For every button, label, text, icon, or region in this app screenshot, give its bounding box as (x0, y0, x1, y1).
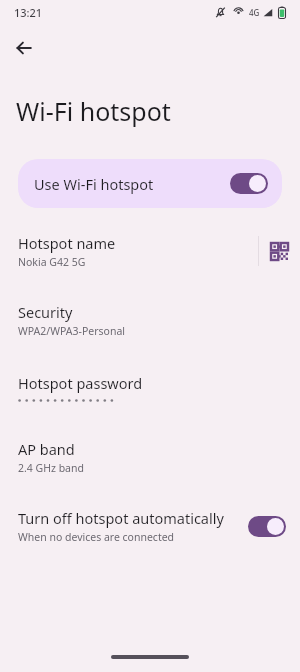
button[interactable]: Back (6, 30, 42, 66)
staticText: When no devices are connected (18, 530, 175, 544)
staticText: 13:21 (14, 5, 43, 20)
button[interactable]: Use Wi-Fi hotspot (18, 159, 282, 208)
staticText: Security (18, 302, 73, 322)
button[interactable]: Hotspot name (0, 223, 258, 279)
staticText: Turn off hotspot automatically (18, 508, 224, 528)
button[interactable]: Hotspot password (0, 360, 300, 416)
button[interactable]: Toggle (248, 516, 286, 537)
staticText: Nokia G42 5G (18, 255, 86, 269)
staticText: Wi-Fi hotspot (16, 94, 171, 128)
button[interactable]: Toggle (230, 173, 268, 194)
button[interactable]: AP band (0, 426, 300, 488)
staticText: WPA2/WPA3-Personal (18, 324, 125, 338)
staticText: 2.4 GHz band (18, 461, 84, 475)
staticText: Hotspot name (18, 233, 116, 253)
button[interactable]: Security (0, 289, 300, 351)
button[interactable]: Turn off hotspot automatically (0, 497, 300, 555)
staticText: AP band (18, 439, 75, 459)
staticText: Use Wi-Fi hotspot (34, 174, 230, 194)
button[interactable]: Share hotspot QR code (265, 237, 294, 266)
staticText: Hotspot password (18, 373, 143, 393)
staticText: 4G (249, 7, 260, 18)
